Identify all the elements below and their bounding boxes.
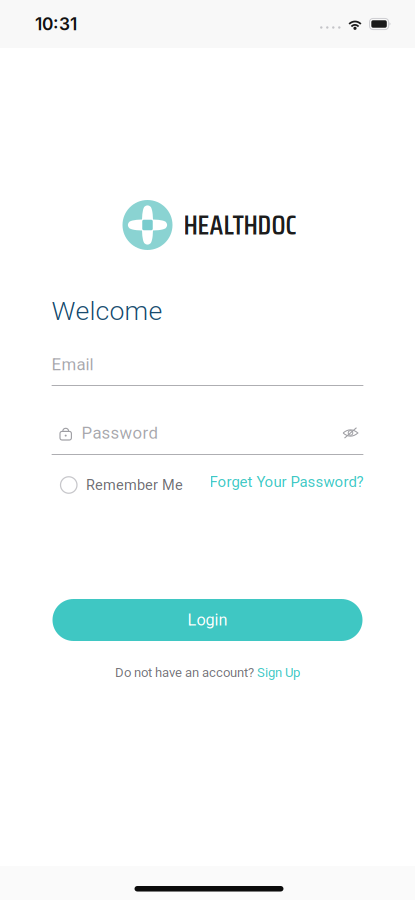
- staticText: Sign Up: [257, 665, 300, 680]
- staticText: HEALTHDOC: [183, 203, 296, 247]
- staticText: Forget Your Password?: [209, 473, 363, 491]
- button[interactable]: Login: [52, 599, 362, 641]
- staticText: 10:31: [35, 13, 77, 34]
- button[interactable]: Forget Your Password?: [209, 474, 363, 496]
- button[interactable]: Remember Me: [51, 474, 183, 496]
- staticText: Welcome: [51, 295, 162, 327]
- button[interactable]: Sign Up: [257, 665, 300, 680]
- staticText: Password: [81, 423, 157, 443]
- staticText: Do not have an account?: [115, 665, 257, 680]
- staticText: Email: [51, 355, 93, 374]
- staticText: Login: [187, 610, 227, 630]
- button[interactable]: Show password: [342, 426, 358, 439]
- staticText: Remember Me: [86, 476, 183, 493]
